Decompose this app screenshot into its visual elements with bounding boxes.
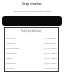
button[interactable]: Thursday [5, 50, 58, 55]
button[interactable]: Monday [5, 35, 58, 40]
staticText: 5,730 steps [44, 56, 57, 59]
staticText: Wednesday [6, 46, 19, 49]
button[interactable]: Friday [5, 55, 58, 60]
button[interactable]: Saturday [5, 60, 58, 65]
staticText: 9,012 steps [44, 61, 57, 64]
staticText: 6,908 steps [44, 41, 57, 44]
staticText: 4,120 steps [44, 36, 57, 39]
button[interactable]: Sunday [5, 65, 58, 70]
button[interactable] [2, 16, 62, 26]
staticText: weekly activity summary report [14, 9, 51, 12]
staticText: Monday [6, 36, 16, 39]
staticText: Step tracker [22, 2, 42, 6]
staticText: Saturday [6, 61, 16, 64]
staticText: 2,664 steps [44, 66, 57, 69]
button[interactable]: Wednesday [5, 45, 58, 50]
staticText: Thursday [6, 51, 17, 54]
staticText: Friday [6, 56, 13, 59]
staticText: 3,441 steps [44, 46, 57, 49]
button[interactable]: Tuesday [5, 40, 58, 45]
staticText: Sunday [6, 66, 15, 69]
staticText: Tuesday [6, 41, 16, 44]
staticText: 8,205 steps [44, 51, 57, 54]
staticText: Daily breakdown [21, 29, 42, 33]
